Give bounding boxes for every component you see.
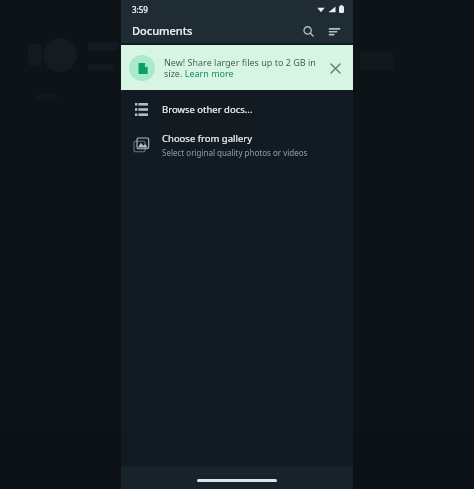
button[interactable]: New! Share larger files up to 2 GB in si… [121, 45, 353, 90]
button[interactable]: Browse other docs... [121, 93, 353, 125]
staticText: Documents [132, 23, 193, 38]
button[interactable]: Search [297, 20, 319, 42]
button[interactable]: Choose from gallery [121, 125, 353, 165]
button[interactable]: Sort [323, 20, 345, 42]
staticText: Choose from gallery [162, 132, 253, 145]
staticText: New! Share larger files up to 2 GB in si… [164, 56, 319, 80]
staticText: 3:59 [132, 4, 148, 15]
button[interactable]: Dismiss [325, 58, 345, 78]
staticText: Browse other docs... [162, 103, 253, 116]
staticText: Select original quality photos or videos [162, 147, 308, 158]
